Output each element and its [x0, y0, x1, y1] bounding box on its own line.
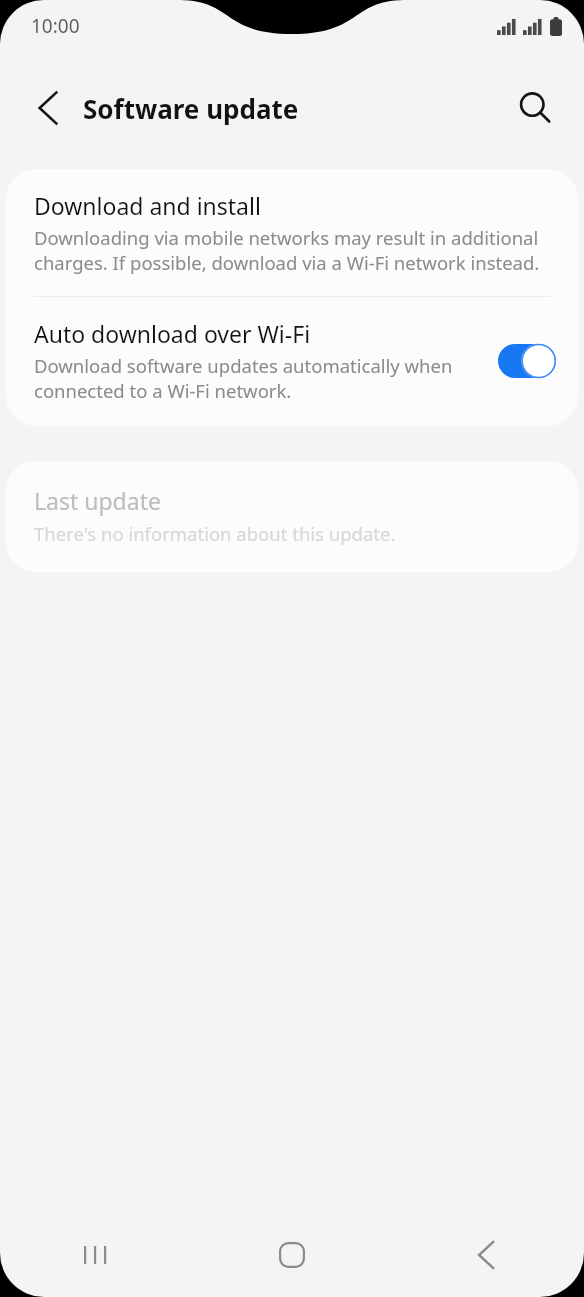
button[interactable]: Last update	[6, 461, 578, 572]
staticText: Downloading via mobile networks may resu…	[34, 225, 550, 276]
button[interactable]: Auto download over Wi-Fi	[6, 297, 578, 426]
button[interactable]: Back	[389, 1213, 584, 1297]
staticText: Download and install	[34, 190, 261, 221]
button[interactable]: Auto download over Wi-Fi toggle	[496, 339, 558, 383]
staticText: There's no information about this update…	[34, 521, 396, 546]
staticText: 10:00	[31, 13, 80, 39]
button[interactable]: Download and install	[6, 169, 578, 296]
staticText: Auto download over Wi-Fi	[34, 318, 311, 349]
button[interactable]: Search	[504, 77, 566, 139]
button[interactable]: Home	[194, 1213, 389, 1297]
staticText: Last update	[34, 485, 161, 516]
staticText: Software update	[83, 91, 299, 126]
button[interactable]: Recents	[0, 1213, 194, 1297]
button[interactable]: Back	[18, 77, 80, 139]
staticText: Download software updates automatically …	[34, 353, 484, 404]
